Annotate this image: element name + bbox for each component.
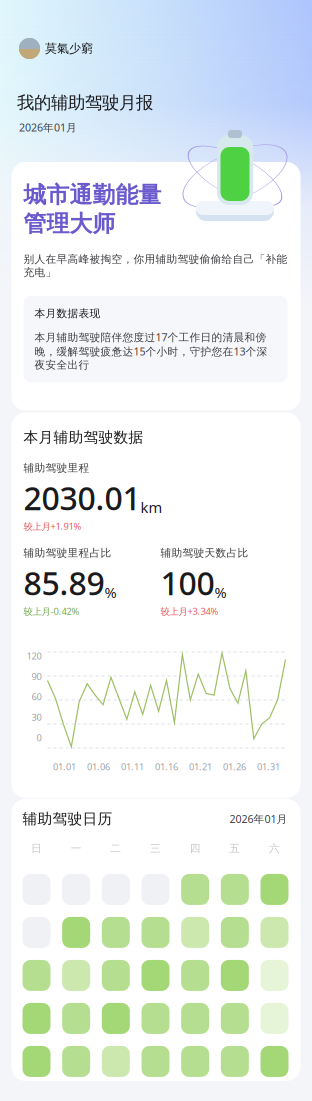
staticText: % xyxy=(214,583,226,602)
staticText: 五 xyxy=(229,842,240,855)
staticText: 30 xyxy=(31,711,41,723)
staticText: 01.01 xyxy=(53,760,76,773)
staticText: 较上月+3.34% xyxy=(160,605,218,617)
staticText: 较上月+1.91% xyxy=(23,520,81,532)
staticText: 2026年01月 xyxy=(19,120,77,134)
staticText: 01.16 xyxy=(155,760,178,773)
staticText: 三 xyxy=(150,842,161,855)
staticText: 一 xyxy=(71,842,82,855)
staticText: 85.89 xyxy=(23,561,104,604)
staticText: 90 xyxy=(31,670,41,682)
staticText: 2026年01月 xyxy=(229,812,287,826)
staticText: 2030.01 xyxy=(23,476,140,519)
staticText: 辅助驾驶日历 xyxy=(22,810,112,828)
staticText: % xyxy=(104,583,116,602)
staticText: 别人在早高峰被掏空，你用辅助驾驶偷偷给自己「补能充电」 xyxy=(23,253,287,279)
staticText: 辅助驾驶里程 xyxy=(23,461,89,474)
staticText: 01.31 xyxy=(257,760,280,773)
staticText: 01.21 xyxy=(189,760,212,773)
staticText: 01.26 xyxy=(223,760,246,773)
staticText: 100 xyxy=(160,561,214,604)
staticText: 我的辅助驾驶月报 xyxy=(17,92,153,113)
staticText: 本月辅助驾驶数据 xyxy=(23,428,143,446)
staticText: 01.11 xyxy=(121,760,144,773)
staticText: 较上月-0.42% xyxy=(23,605,79,617)
staticText: 辅助驾驶天数占比 xyxy=(160,546,248,559)
staticText: 六 xyxy=(269,842,280,855)
staticText: 四 xyxy=(190,842,201,855)
staticText: 二 xyxy=(110,842,121,855)
staticText: 辅助驾驶里程占比 xyxy=(23,546,111,559)
staticText: 管理大师 xyxy=(23,210,115,238)
staticText: 日 xyxy=(31,842,42,855)
staticText: 城市通勤能量 xyxy=(23,181,161,209)
staticText: 0 xyxy=(36,731,41,744)
staticText: 01.06 xyxy=(87,760,110,773)
staticText: 120 xyxy=(26,650,41,662)
staticText: 60 xyxy=(31,690,41,703)
staticText: km xyxy=(140,498,162,517)
staticText: 本月辅助驾驶陪伴您度过17个工作日的清晨和傍晚，缓解驾驶疲惫达15个小时，守护您… xyxy=(34,330,267,371)
button[interactable]: 莫氣少窮 xyxy=(0,0,93,59)
staticText: 本月数据表现 xyxy=(34,307,100,320)
staticText: 莫氣少窮 xyxy=(45,41,93,56)
